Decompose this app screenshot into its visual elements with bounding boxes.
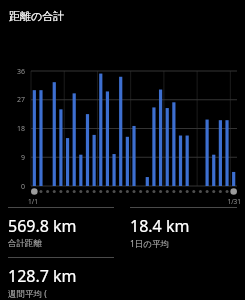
- staticText: 9: [3, 153, 25, 163]
- staticText: 1/31: [0, 197, 241, 206]
- button[interactable]: Monthly distance bar chart: [0, 47, 245, 202]
- staticText: 1/1: [28, 197, 38, 206]
- button[interactable]: 128.7 km: [8, 257, 114, 300]
- staticText: 27: [3, 95, 25, 105]
- staticText: 36: [3, 67, 25, 77]
- staticText: 合計距離: [8, 238, 42, 249]
- staticText: 距離の合計: [9, 9, 65, 23]
- staticText: 週間平均 (: [8, 288, 47, 300]
- staticText: 1日の平均: [130, 238, 170, 250]
- staticText: 18: [3, 124, 25, 134]
- staticText: 569.8 km: [8, 215, 77, 237]
- staticText: 0: [3, 182, 25, 192]
- button[interactable]: 18.4 km: [130, 207, 237, 257]
- staticText: 128.7 km: [8, 265, 77, 287]
- button[interactable]: 569.8 km: [8, 207, 114, 256]
- staticText: 18.4 km: [130, 215, 190, 237]
